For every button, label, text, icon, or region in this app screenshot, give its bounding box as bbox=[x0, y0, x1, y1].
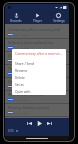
staticText: Thoughts on that new book bbox=[8, 67, 50, 71]
staticText: 1:12 · 2.4 MB bbox=[14, 46, 29, 49]
staticText: 0:00 bbox=[8, 129, 14, 133]
button[interactable]: Quick note about the project bbox=[5, 52, 69, 64]
staticText: Open with bbox=[15, 90, 31, 94]
staticText: Commentary after a morning stroll bbox=[8, 28, 61, 32]
button[interactable]: Next bbox=[44, 118, 54, 128]
button[interactable]: Records bbox=[5, 11, 27, 24]
staticText: mp3 bbox=[8, 59, 13, 62]
button[interactable]: Rename bbox=[12, 67, 66, 74]
staticText: Idea for the garden layout bbox=[8, 80, 48, 84]
staticText: Delete bbox=[15, 76, 25, 80]
staticText: Set as bbox=[15, 83, 24, 87]
staticText: mp3 bbox=[8, 72, 13, 75]
staticText: Why recorders are great bbox=[8, 93, 45, 97]
button[interactable]: Idea for the garden layout bbox=[5, 78, 69, 90]
button[interactable]: Why recorders are great bbox=[5, 91, 69, 103]
button[interactable]: Commentary after a morning stroll bbox=[5, 26, 69, 38]
staticText: Rename bbox=[15, 69, 28, 73]
button[interactable]: Reflecting about weekend trip bbox=[5, 39, 69, 51]
staticText: Morning meeting summary bbox=[8, 106, 50, 110]
button[interactable]: Thoughts on that new book bbox=[5, 65, 69, 77]
staticText: Reflecting about weekend trip bbox=[8, 41, 53, 45]
button[interactable]: Player bbox=[27, 11, 48, 24]
button[interactable]: Play bbox=[34, 118, 44, 128]
staticText: mp3 bbox=[8, 111, 13, 114]
staticText: Commentary after a morning stroll bbox=[15, 51, 63, 56]
staticText: mp3 bbox=[8, 85, 13, 88]
staticText: 0:51 · 1.4 MB bbox=[14, 85, 29, 88]
staticText: 0:45 · 1.2 MB bbox=[14, 33, 29, 36]
staticText: mp3 bbox=[8, 98, 13, 101]
button[interactable]: Open with bbox=[12, 88, 66, 95]
staticText: mp3 bbox=[8, 46, 13, 49]
button[interactable]: Share / Send bbox=[12, 60, 66, 67]
staticText: Player bbox=[33, 19, 42, 23]
staticText: Records bbox=[10, 19, 22, 23]
staticText: 3:10 · 5.2 MB bbox=[14, 111, 29, 114]
button[interactable]: Set as bbox=[12, 81, 66, 88]
button[interactable]: Morning meeting summary bbox=[5, 104, 69, 116]
staticText: 1:33 · 2.8 MB bbox=[14, 98, 29, 101]
button[interactable]: Settings bbox=[48, 11, 69, 24]
staticText: Settings bbox=[53, 19, 65, 23]
button[interactable]: Delete bbox=[12, 74, 66, 81]
staticText: mp3 bbox=[8, 33, 13, 36]
staticText: Share / Send bbox=[15, 62, 34, 66]
button[interactable]: Previous bbox=[24, 118, 34, 128]
staticText: Quick note about the project bbox=[8, 54, 51, 58]
